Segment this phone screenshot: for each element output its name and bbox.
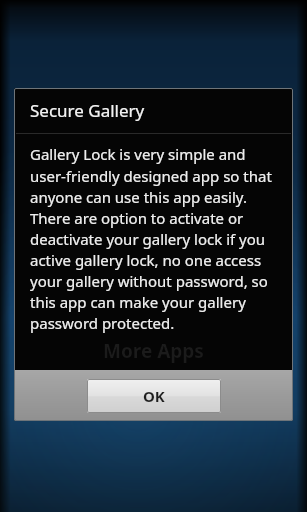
staticText: Secure Gallery bbox=[30, 99, 145, 122]
staticText: More Apps bbox=[103, 338, 204, 364]
button[interactable]: OK bbox=[87, 379, 221, 413]
staticText: OK bbox=[143, 386, 165, 406]
staticText: Gallery Lock is very simple and user-fri… bbox=[30, 144, 281, 333]
